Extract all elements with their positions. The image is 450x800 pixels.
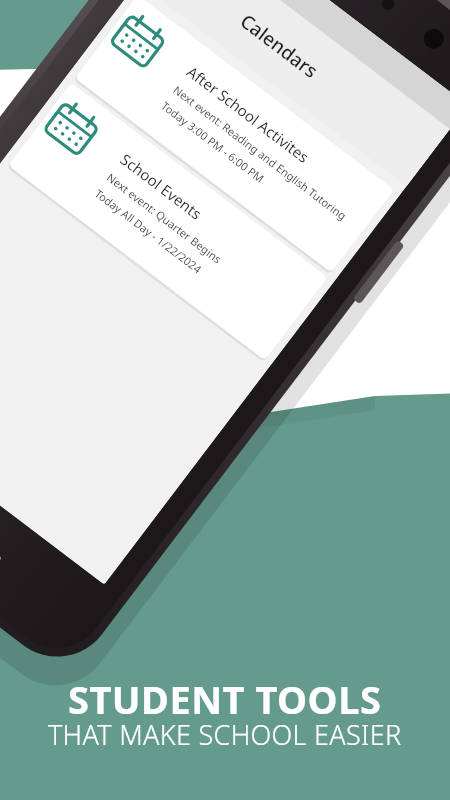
- button[interactable]: Back: [332, 34, 362, 60]
- button[interactable]: [300, 80, 450, 138]
- button[interactable]: [268, 134, 418, 192]
